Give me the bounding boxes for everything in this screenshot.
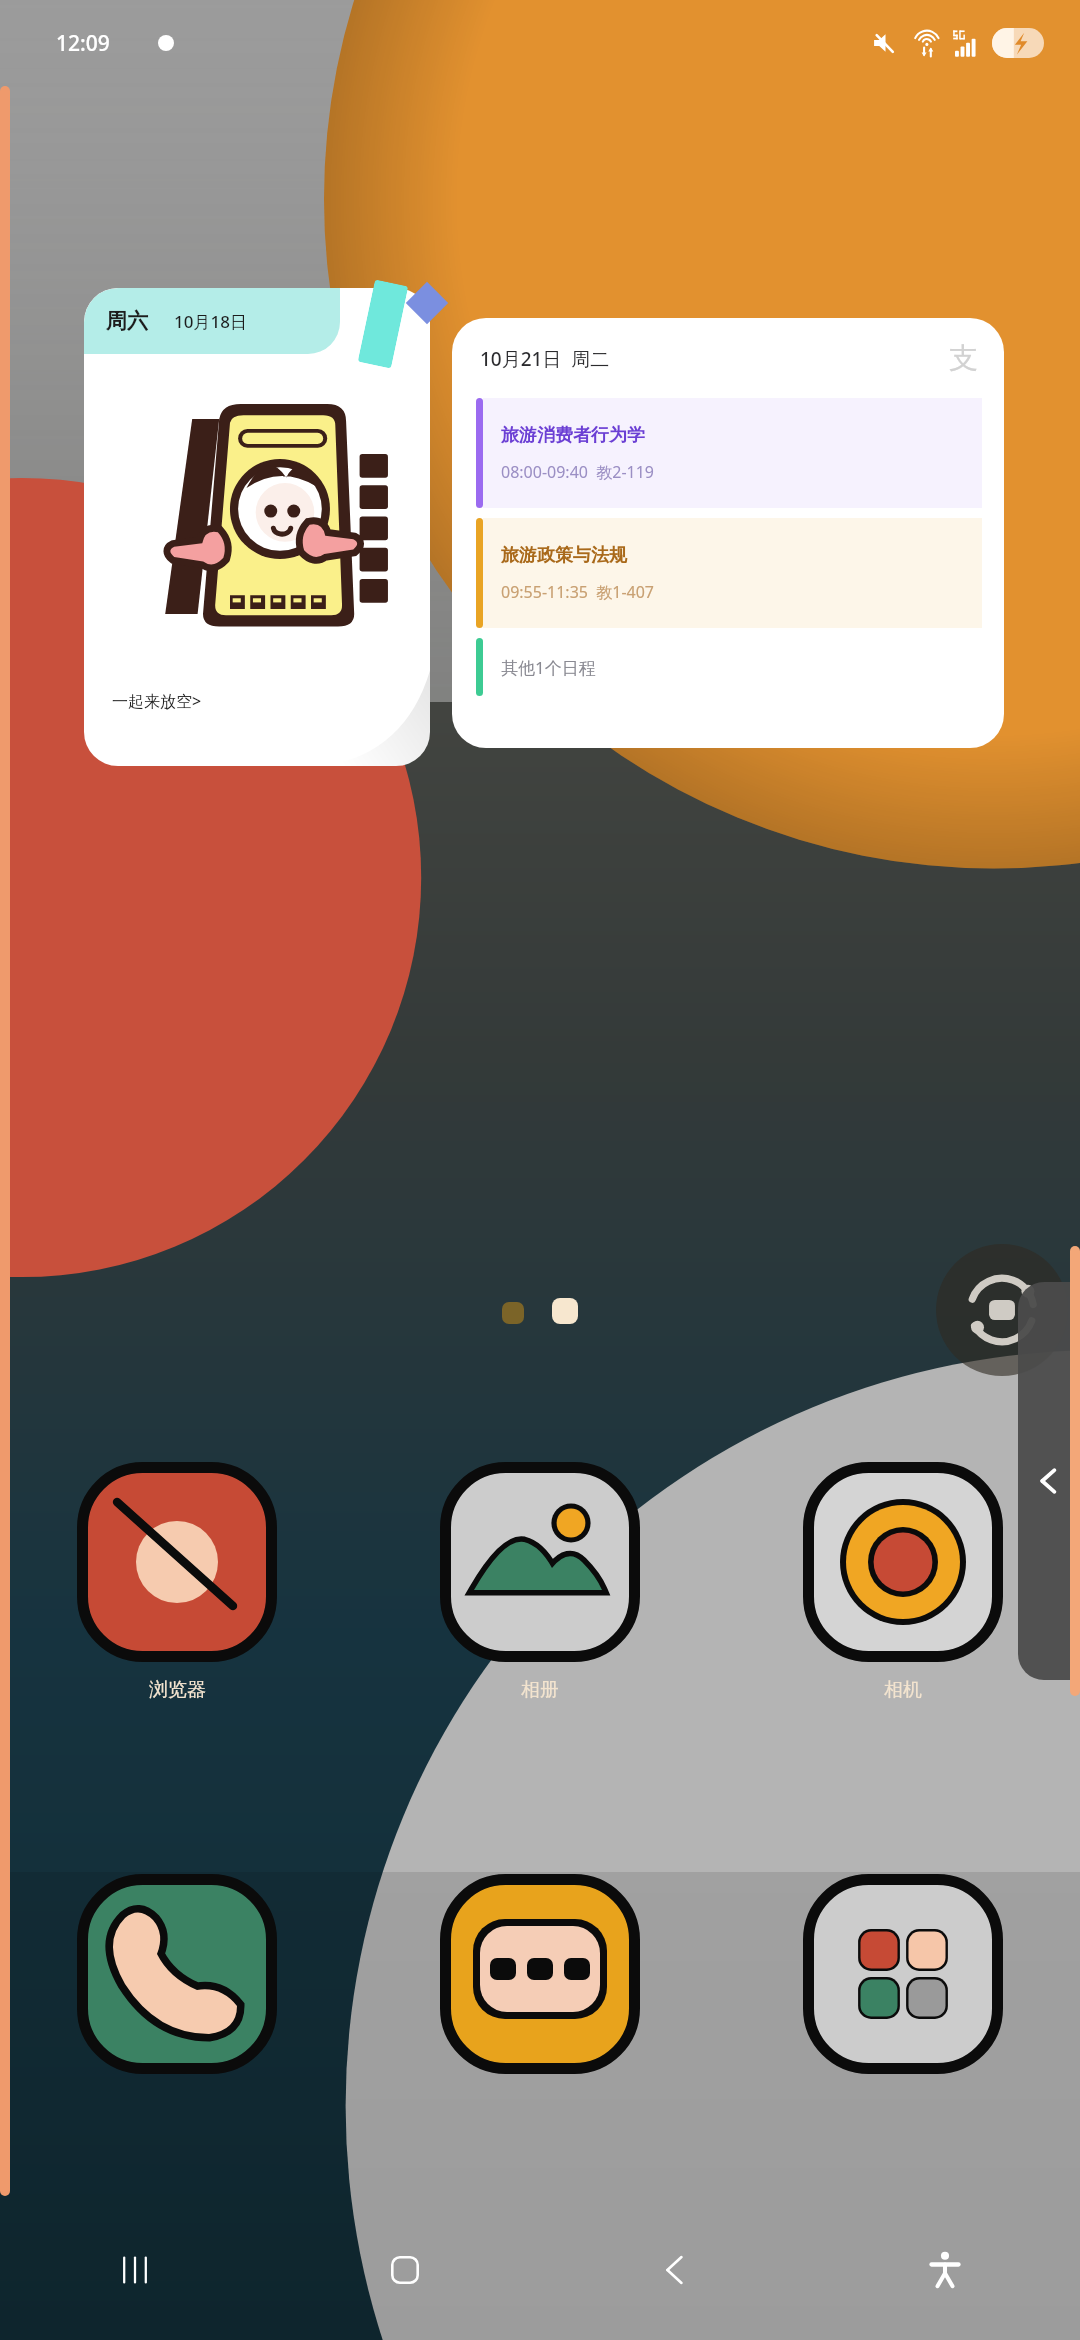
button[interactable]: 相机 [798, 1462, 1008, 1702]
button[interactable]: 10月21日 周二 [452, 318, 1004, 748]
button[interactable]: 周六 [84, 288, 430, 766]
button[interactable] [72, 1874, 282, 2074]
button[interactable] [798, 1874, 1008, 2074]
button[interactable]: Back [540, 2200, 810, 2340]
staticText: 周六 [106, 308, 148, 334]
staticText: 相机 [884, 1678, 922, 1702]
staticText: 浏览器 [149, 1678, 206, 1702]
button[interactable]: Home [270, 2200, 540, 2340]
staticText: 一起来放空> [112, 690, 202, 712]
staticText: 其他1个日程 [501, 656, 596, 679]
button[interactable]: 旅游消费者行为学 [476, 398, 982, 508]
button[interactable]: 浏览器 [72, 1462, 282, 1702]
button[interactable] [435, 1874, 645, 2074]
staticText: 支 [949, 340, 978, 377]
button[interactable]: 相册 [435, 1462, 645, 1702]
staticText: 相册 [521, 1678, 559, 1702]
button[interactable]: Assistant [936, 1244, 1068, 1376]
staticText: 10月21日 周二 [480, 346, 610, 372]
staticText: 10月18日 [174, 310, 247, 333]
button[interactable]: Accessibility [810, 2200, 1080, 2340]
staticText: 旅游消费者行为学 [501, 424, 645, 447]
staticText: 09:55-11:35 教1-407 [501, 581, 655, 603]
button[interactable]: Edge panel [1018, 1282, 1080, 1680]
staticText: 12:09 [56, 29, 110, 58]
staticText: 旅游政策与法规 [501, 544, 627, 567]
button[interactable]: 旅游政策与法规 [476, 518, 982, 628]
staticText: 08:00-09:40 教2-119 [501, 461, 655, 483]
button[interactable]: 其他1个日程 [476, 638, 982, 696]
button[interactable]: Recents [0, 2200, 270, 2340]
